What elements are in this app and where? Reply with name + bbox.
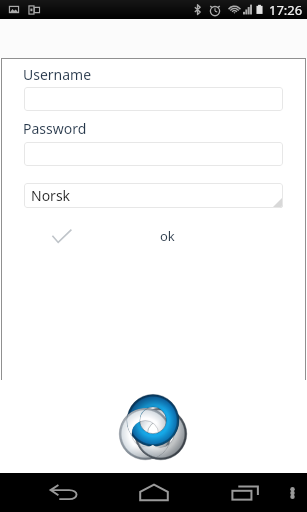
staticText: 17:26 bbox=[269, 1, 303, 19]
button[interactable]: Text field bbox=[24, 142, 283, 166]
button[interactable]: Text field bbox=[24, 87, 283, 111]
staticText: ok bbox=[160, 227, 175, 245]
button[interactable]: Norsk bbox=[24, 183, 283, 208]
button[interactable]: Home bbox=[134, 473, 174, 512]
staticText: Password bbox=[23, 119, 87, 138]
staticText: Username bbox=[23, 65, 92, 84]
button[interactable]: Accept bbox=[45, 223, 79, 249]
button[interactable]: Back bbox=[46, 473, 83, 512]
button[interactable]: More options bbox=[282, 473, 302, 512]
button[interactable]: Recent apps bbox=[226, 473, 263, 512]
button[interactable]: ok bbox=[150, 223, 184, 249]
staticText: Norsk bbox=[31, 186, 71, 205]
